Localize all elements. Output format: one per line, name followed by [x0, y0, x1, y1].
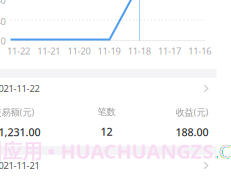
staticText: 2021-11-21	[0, 159, 39, 172]
staticText: 收益(元)	[175, 106, 208, 118]
staticText: 2021-11-22	[0, 82, 39, 95]
staticText: 40	[0, 15, 5, 28]
staticText: 11-17	[158, 45, 181, 57]
staticText: 11-21	[37, 45, 60, 57]
staticText: 11-22	[7, 45, 30, 57]
staticText: 0	[0, 35, 5, 47]
staticText: 21,231.00	[0, 125, 40, 139]
staticText: 州应用 • HUACHUANGZS.C	[0, 138, 231, 164]
staticText: 11-16	[188, 45, 211, 57]
staticText: 11-19	[98, 45, 121, 57]
staticText: 交易额(元)	[0, 106, 34, 118]
button[interactable]: 2021-11-22	[0, 78, 216, 99]
staticText: 12	[100, 125, 112, 139]
staticText: 80	[0, 0, 5, 6]
staticText: 11-18	[128, 45, 151, 57]
staticText: 188.00	[175, 125, 208, 139]
staticText: 笔数	[97, 106, 115, 118]
staticText: 11-20	[67, 45, 90, 57]
button[interactable]: 2021-11-21	[0, 155, 216, 176]
